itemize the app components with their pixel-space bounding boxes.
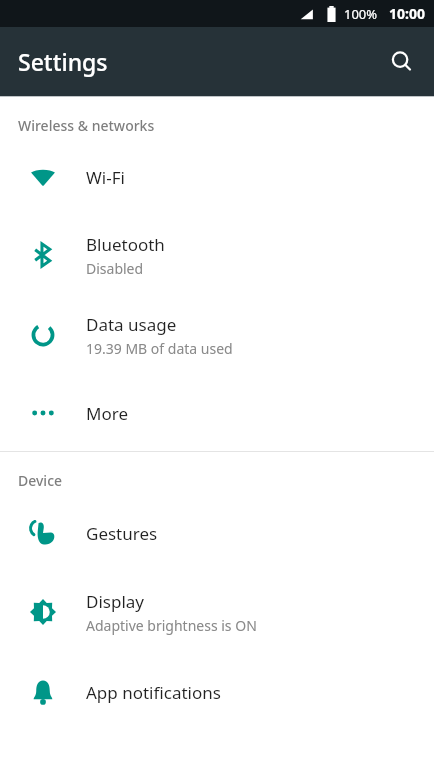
staticText: Bluetooth bbox=[86, 233, 165, 256]
button[interactable]: Wi-Fi bbox=[0, 139, 434, 215]
button[interactable]: Gestures bbox=[0, 494, 434, 572]
button[interactable]: Display bbox=[0, 572, 434, 652]
staticText: Display bbox=[86, 590, 144, 613]
staticText: App notifications bbox=[86, 681, 221, 704]
staticText: 100% bbox=[344, 5, 378, 23]
staticText: More bbox=[86, 402, 128, 425]
staticText: Data usage bbox=[86, 313, 177, 336]
button[interactable]: Search bbox=[378, 38, 426, 86]
button[interactable]: Data usage bbox=[0, 295, 434, 375]
staticText: Device bbox=[18, 471, 63, 490]
staticText: Settings bbox=[18, 46, 108, 77]
staticText: Disabled bbox=[86, 259, 144, 278]
button[interactable]: App notifications bbox=[0, 652, 434, 732]
staticText: Wi-Fi bbox=[86, 166, 125, 189]
staticText: Wireless & networks bbox=[18, 116, 155, 135]
staticText: 19.39 MB of data used bbox=[86, 339, 233, 358]
button[interactable]: More bbox=[0, 375, 434, 451]
staticText: Gestures bbox=[86, 522, 158, 545]
staticText: 10:00 bbox=[389, 4, 425, 23]
staticText: Adaptive brightness is ON bbox=[86, 616, 257, 635]
button[interactable]: Bluetooth bbox=[0, 215, 434, 295]
